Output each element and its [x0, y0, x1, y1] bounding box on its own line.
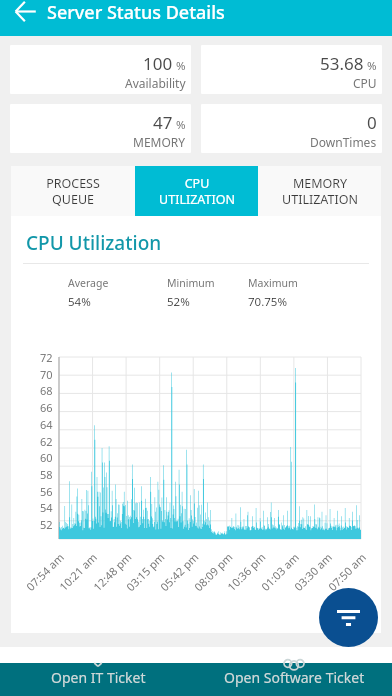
staticText: 47: [153, 111, 173, 134]
staticText: 12:48 pm: [90, 549, 135, 594]
staticText: 10:36 pm: [224, 549, 269, 594]
staticText: 56: [40, 484, 53, 499]
staticText: Server Status Details: [47, 0, 225, 22]
staticText: Minimum: [167, 276, 215, 290]
staticText: 03:15 pm: [123, 549, 168, 594]
staticText: 66: [40, 400, 53, 415]
staticText: 58: [40, 467, 53, 482]
staticText: 62: [40, 434, 53, 449]
staticText: 70.75%: [248, 294, 287, 310]
staticText: 72: [40, 350, 53, 365]
staticText: 05:42 pm: [157, 549, 202, 594]
staticText: Open Software Ticket: [224, 668, 365, 687]
staticText: CPU UTILIZATION: [159, 175, 235, 208]
staticText: 54: [40, 500, 53, 515]
staticText: 60: [40, 450, 53, 465]
button[interactable]: 100: [10, 45, 191, 94]
staticText: 53.68: [320, 52, 364, 75]
staticText: Availability: [125, 75, 186, 91]
button[interactable]: MEMORY UTILIZATION: [258, 166, 381, 216]
staticText: DownTimes: [310, 134, 377, 150]
staticText: 68: [40, 383, 53, 398]
staticText: Average: [68, 276, 109, 290]
staticText: 07:50 am: [325, 549, 369, 594]
staticText: 08:09 pm: [191, 549, 236, 594]
staticText: 100: [143, 52, 173, 75]
button[interactable]: 53.68: [201, 45, 382, 94]
staticText: %: [367, 58, 377, 74]
button[interactable]: CPU UTILIZATION: [135, 166, 258, 216]
staticText: Open IT Ticket: [51, 668, 146, 687]
button[interactable]: Filter: [319, 588, 378, 647]
staticText: %: [176, 58, 186, 74]
staticText: PROCESS QUEUE: [46, 175, 100, 208]
staticText: 64: [40, 417, 53, 432]
button[interactable]: Open Software Ticket: [196, 663, 392, 696]
staticText: MEMORY: [133, 134, 186, 150]
staticText: 52: [40, 517, 53, 532]
button[interactable]: PROCESS QUEUE: [11, 166, 135, 216]
staticText: CPU: [353, 75, 377, 91]
staticText: %: [176, 117, 186, 133]
staticText: 07:54 am: [23, 549, 67, 594]
staticText: 54%: [68, 294, 91, 310]
staticText: MEMORY UTILIZATION: [282, 175, 358, 208]
staticText: Maximum: [248, 276, 298, 290]
staticText: 52%: [167, 294, 190, 310]
button[interactable]: 0: [201, 104, 382, 153]
staticText: 0: [367, 111, 377, 134]
button[interactable]: 47: [10, 104, 191, 153]
button[interactable]: Back: [0, 0, 47, 22]
button[interactable]: Open IT Ticket: [0, 663, 196, 696]
staticText: CPU Utilization: [26, 230, 162, 256]
staticText: 70: [40, 367, 53, 382]
staticText: 10:21 am: [56, 549, 100, 594]
staticText: 01:03 am: [258, 549, 302, 594]
staticText: 03:30 am: [291, 549, 335, 594]
